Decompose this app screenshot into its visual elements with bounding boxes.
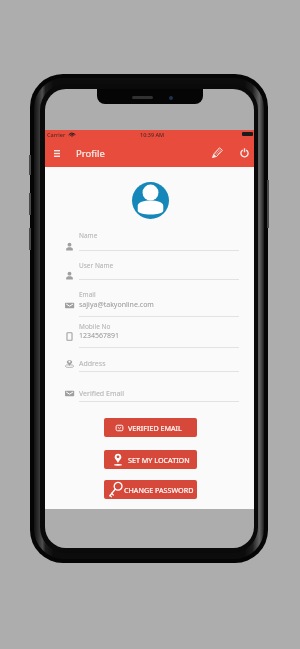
staticText: 1234567891 — [79, 331, 120, 341]
staticText: Mobile No — [79, 322, 111, 331]
staticText: Carrier — [47, 131, 66, 138]
staticText: 10:39 AM — [140, 131, 165, 138]
staticText: Address — [79, 359, 106, 369]
staticText: Name — [79, 231, 98, 240]
staticText: Email — [79, 290, 96, 299]
button[interactable]: Edit profile — [208, 143, 226, 161]
button[interactable]: Open navigation menu — [48, 143, 66, 161]
button[interactable]: VERIFIED EMAIL — [104, 418, 197, 437]
staticText: Profile — [76, 147, 105, 160]
staticText: User Name — [79, 261, 114, 270]
staticText: VERIFIED EMAIL — [128, 423, 182, 433]
button[interactable]: CHANGE PASSWORD — [104, 480, 197, 499]
staticText: Verified Email — [79, 389, 124, 399]
button[interactable]: Log out — [235, 143, 253, 161]
staticText: CHANGE PASSWORD — [124, 485, 194, 495]
staticText: sajiya@takyonline.com — [79, 300, 154, 310]
staticText: SET MY LOCATION — [128, 455, 190, 465]
button[interactable]: SET MY LOCATION — [104, 450, 197, 469]
